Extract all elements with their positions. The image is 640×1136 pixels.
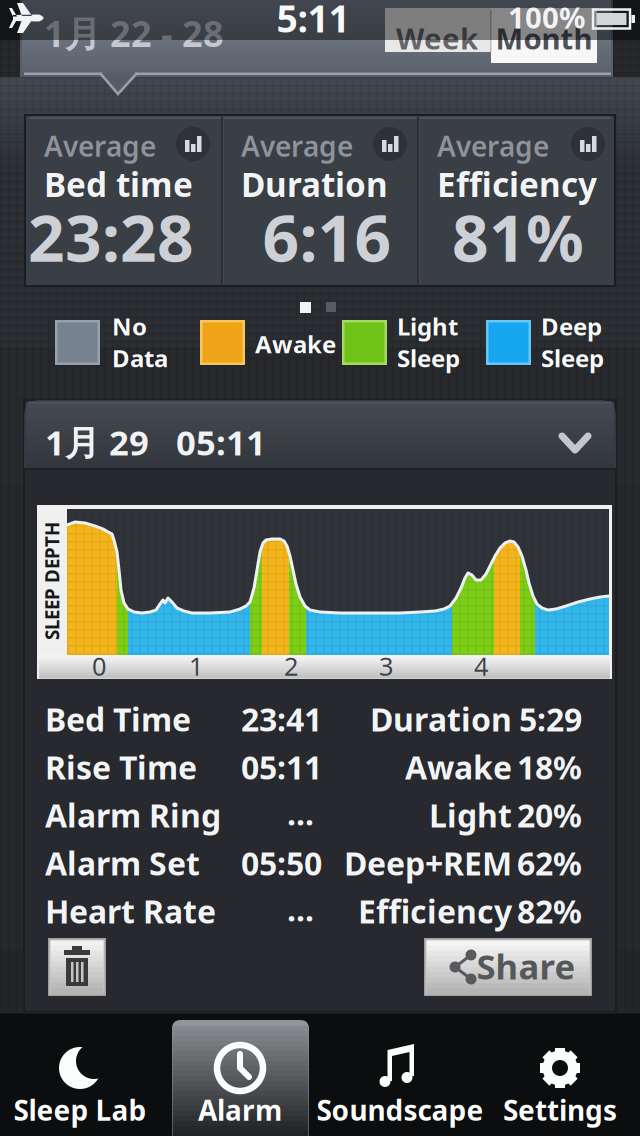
staticText: Light bbox=[429, 794, 512, 836]
button[interactable]: Settings bbox=[480, 1012, 640, 1136]
staticText: 2 bbox=[284, 649, 298, 683]
staticText: Average bbox=[437, 127, 549, 165]
staticText: 1月 22 - 28 bbox=[44, 9, 224, 57]
staticText: Average bbox=[241, 127, 353, 165]
staticText: Settings bbox=[503, 1091, 617, 1129]
staticText: Awake bbox=[405, 746, 512, 788]
staticText: Awake bbox=[255, 328, 336, 360]
staticText: Efficiency bbox=[437, 162, 597, 206]
button[interactable]: Show Bed time chart bbox=[176, 127, 210, 161]
staticText: 81% bbox=[452, 194, 584, 279]
staticText: Sleep Lab bbox=[13, 1091, 146, 1129]
staticText: 23:41 bbox=[241, 698, 322, 740]
staticText: 23:28 bbox=[28, 194, 194, 279]
staticText: 6:16 bbox=[262, 194, 391, 279]
staticText: 20% bbox=[517, 794, 582, 836]
button[interactable]: Share bbox=[424, 938, 592, 996]
staticText: Duration bbox=[241, 162, 388, 206]
button[interactable]: Collapse bbox=[547, 420, 603, 464]
button[interactable]: Show Duration chart bbox=[373, 127, 407, 161]
staticText: 5:29 bbox=[519, 698, 582, 740]
staticText: 05:50 bbox=[241, 842, 322, 884]
staticText: Week bbox=[396, 18, 478, 57]
button[interactable]: Show Efficiency chart bbox=[571, 127, 605, 161]
staticText: Soundscape bbox=[316, 1091, 483, 1129]
staticText: Alarm bbox=[198, 1091, 282, 1129]
staticText: Alarm Set bbox=[45, 842, 200, 884]
staticText: 5:11 bbox=[276, 0, 349, 43]
staticText: 1月 29 05:11 bbox=[45, 419, 266, 465]
staticText: 0 bbox=[92, 649, 106, 683]
staticText: Rise Time bbox=[45, 746, 197, 788]
staticText: Month bbox=[495, 18, 592, 57]
staticText: Deep Sleep bbox=[541, 310, 604, 374]
staticText: 100% bbox=[508, 0, 585, 36]
staticText: 18% bbox=[517, 746, 582, 788]
staticText: Bed time bbox=[44, 162, 193, 206]
staticText: Alarm Ring bbox=[45, 794, 221, 836]
staticText: Light Sleep bbox=[397, 310, 460, 374]
staticText: Duration bbox=[370, 698, 512, 740]
staticText: 05:11 bbox=[241, 746, 322, 788]
staticText: ... bbox=[287, 792, 314, 834]
button[interactable]: Alarm bbox=[160, 1012, 320, 1136]
staticText: Efficiency bbox=[358, 890, 512, 932]
staticText: Bed Time bbox=[45, 698, 191, 740]
staticText: 1 bbox=[189, 649, 203, 683]
button[interactable]: Month bbox=[491, 8, 597, 63]
staticText: 82% bbox=[517, 890, 582, 932]
button[interactable]: Sleep Lab bbox=[0, 1012, 160, 1136]
staticText: ... bbox=[287, 888, 314, 930]
staticText: Heart Rate bbox=[45, 890, 216, 932]
button[interactable]: Week bbox=[385, 8, 491, 52]
staticText: Average bbox=[44, 127, 156, 165]
button[interactable]: Delete bbox=[48, 938, 106, 996]
staticText: 62% bbox=[517, 842, 582, 884]
staticText: 3 bbox=[379, 649, 393, 683]
staticText: 4 bbox=[474, 649, 488, 683]
staticText: No Data bbox=[112, 310, 168, 374]
staticText: Deep+REM bbox=[344, 842, 512, 884]
staticText: SLEEP DEPTH bbox=[0, 569, 111, 593]
button[interactable]: Soundscape bbox=[320, 1012, 480, 1136]
staticText: Share bbox=[476, 943, 575, 989]
